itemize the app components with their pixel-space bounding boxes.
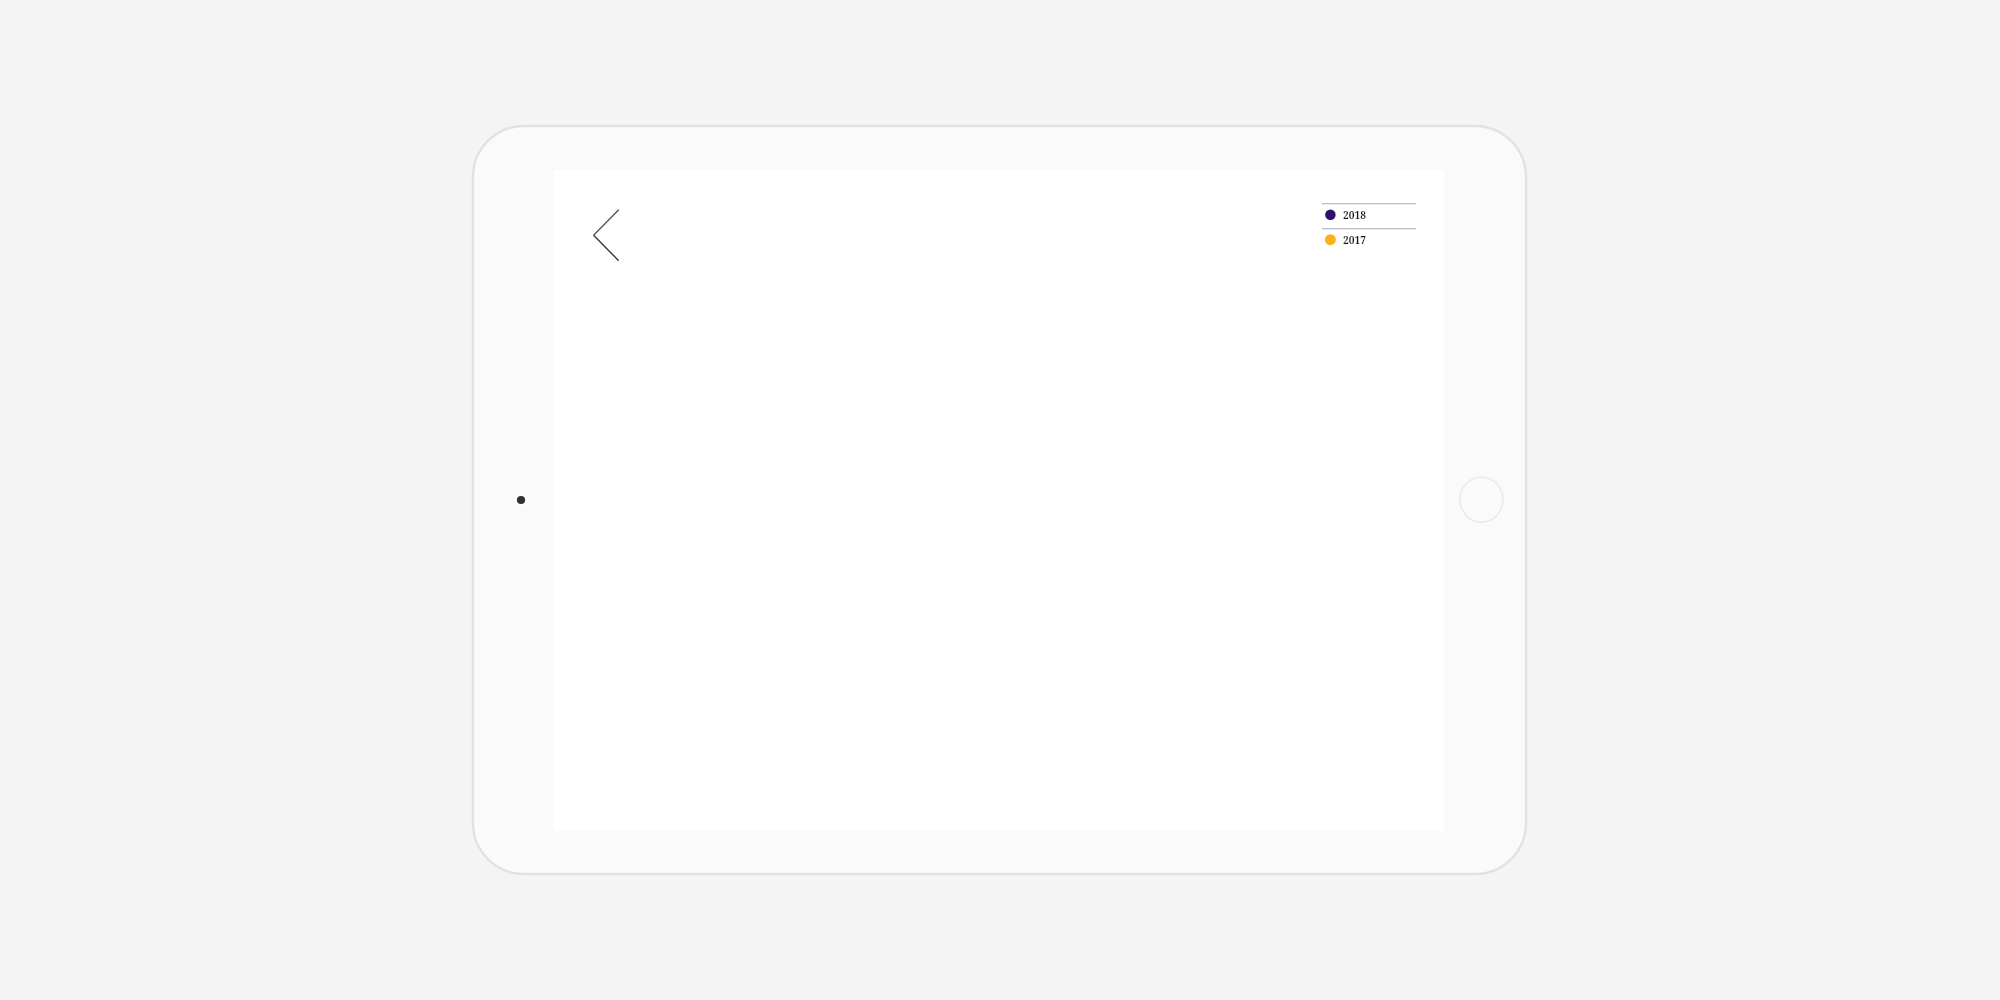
button[interactable]: 2018 (1322, 202, 1416, 227)
button[interactable]: Home (1459, 476, 1504, 523)
staticText: 2018 (1343, 208, 1367, 222)
button[interactable]: Back (578, 194, 634, 276)
button[interactable]: 2017 (1322, 227, 1416, 252)
staticText: 2017 (1343, 233, 1367, 247)
